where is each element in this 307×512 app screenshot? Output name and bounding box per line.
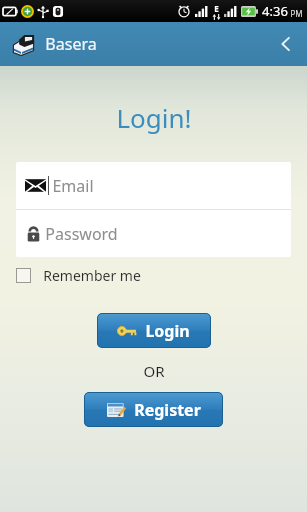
staticText: Login [145,320,190,342]
staticText: PM [290,8,303,19]
button[interactable]: Register [84,392,223,427]
staticText: Basera [45,33,97,55]
staticText: Remember me [43,266,141,285]
button[interactable]: Remember me [16,266,307,285]
button[interactable]: Password [16,210,291,257]
staticText: Password [45,223,118,245]
button[interactable]: Back [265,22,307,66]
staticText: Email [52,175,94,197]
staticText: E [214,3,219,14]
button[interactable]: Login [97,313,211,348]
button[interactable]: Email [16,162,291,209]
staticText: Login! [116,100,192,135]
staticText: Register [134,399,201,421]
staticText: 4:36 [262,2,288,20]
staticText: OR [143,361,165,381]
